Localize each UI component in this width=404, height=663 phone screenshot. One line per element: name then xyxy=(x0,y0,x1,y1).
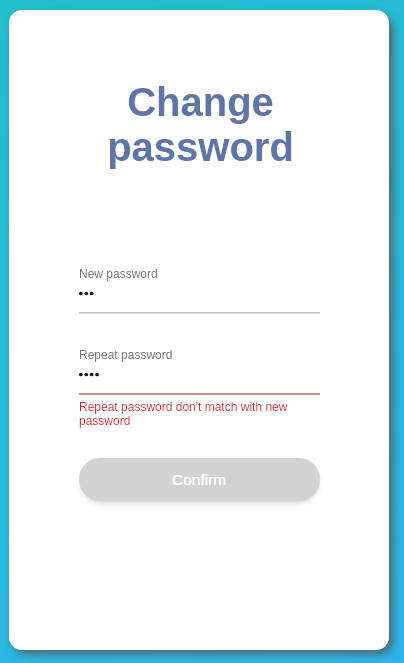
staticText: Repeat password don't match with new pas… xyxy=(79,400,320,428)
button[interactable]: Repeat password xyxy=(79,348,320,395)
staticText: Confirm xyxy=(172,471,227,488)
button[interactable]: New password xyxy=(79,267,320,314)
staticText: Change password xyxy=(12,80,389,170)
staticText: Repeat password xyxy=(79,348,173,361)
button[interactable]: Confirm xyxy=(79,458,320,501)
staticText: New password xyxy=(79,267,158,280)
